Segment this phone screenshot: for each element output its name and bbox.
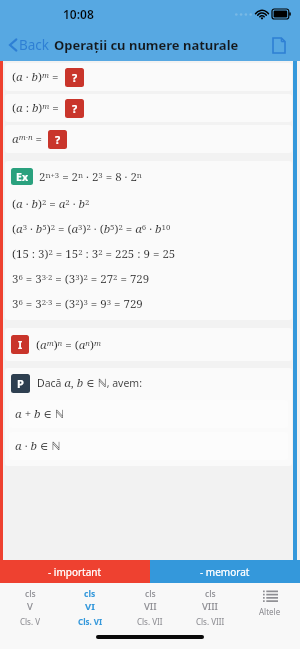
button[interactable]: cls xyxy=(60,583,120,627)
staticText: 2n+3 = 2n · 23 = 8 · 2n xyxy=(39,169,142,185)
button[interactable]: cls xyxy=(120,583,180,627)
staticText: (am)n = (an)m xyxy=(36,337,102,353)
button[interactable]: a · b ∈ ℕ xyxy=(9,432,288,460)
button[interactable]: Back xyxy=(7,32,52,58)
button[interactable]: cls xyxy=(0,583,60,627)
staticText: Cls. VI xyxy=(78,616,103,627)
staticText: I xyxy=(18,337,23,352)
staticText: Cls. V xyxy=(20,616,40,627)
staticText: Cls. VIII xyxy=(196,616,225,627)
staticText: P xyxy=(17,376,24,391)
staticText: Cls. VII xyxy=(137,616,163,627)
staticText: ? xyxy=(72,101,78,116)
button[interactable]: a + b ∈ ℕ xyxy=(9,400,288,428)
button[interactable]: - memorat xyxy=(150,560,300,583)
staticText: cls xyxy=(25,588,36,600)
staticText: ? xyxy=(72,70,78,85)
button[interactable]: Altele xyxy=(240,583,300,627)
button[interactable]: (a · b)m = xyxy=(5,63,292,91)
staticText: cls xyxy=(205,588,216,600)
staticText: 36 = 32·3 = (32)3 = 93 = 729 xyxy=(12,296,143,312)
staticText: Altele xyxy=(259,606,281,617)
staticText: (a · b)2 = a2 · b2 xyxy=(12,196,90,212)
staticText: cls xyxy=(145,588,156,600)
staticText: (a : b)m = xyxy=(12,100,62,116)
staticText: a · b ∈ ℕ xyxy=(15,438,61,454)
staticText: Dacă a, b ∈ ℕ, avem: xyxy=(37,375,142,391)
staticText: 10:08 xyxy=(63,6,94,22)
staticText: VI xyxy=(85,600,95,613)
staticText: a + b ∈ ℕ xyxy=(15,406,64,422)
staticText: - memorat xyxy=(200,565,250,579)
staticText: Operații cu numere naturale xyxy=(54,36,239,54)
staticText: - important xyxy=(48,565,102,579)
button[interactable]: Ex xyxy=(5,161,292,320)
staticText: VII xyxy=(144,600,157,613)
button[interactable]: P xyxy=(5,368,292,466)
staticText: (a3 · b5)2 = (a3)2 · (b5)2 = a6 · b10 xyxy=(12,221,171,237)
button[interactable]: I xyxy=(5,328,292,361)
staticText: am·n = xyxy=(12,131,45,147)
button[interactable]: cls xyxy=(180,583,240,627)
staticText: (15 : 3)2 = 152 : 32 = 225 : 9 = 25 xyxy=(12,246,176,262)
staticText: V xyxy=(27,600,33,613)
staticText: ? xyxy=(55,132,61,147)
button[interactable]: am·n = xyxy=(5,125,292,153)
staticText: (a · b)m = xyxy=(12,69,62,85)
staticText: cls xyxy=(84,588,96,600)
button[interactable]: (a : b)m = xyxy=(5,94,292,122)
button[interactable]: - important xyxy=(0,560,150,583)
staticText: Ex xyxy=(16,170,28,184)
staticText: Back xyxy=(19,36,50,54)
button[interactable]: Document xyxy=(266,32,292,58)
staticText: VIII xyxy=(202,600,218,613)
staticText: 36 = 33·2 = (33)2 = 272 = 729 xyxy=(12,271,150,287)
